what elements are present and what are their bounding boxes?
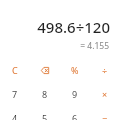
staticText: 9 (72, 88, 78, 100)
button[interactable]: 6 (60, 106, 90, 120)
staticText: C (12, 64, 18, 76)
button[interactable]: Backspace (30, 58, 60, 82)
staticText: = 4.155 (0, 40, 109, 52)
button[interactable]: % (60, 58, 90, 82)
staticText: 498.6÷120 (0, 17, 110, 37)
staticText: 5 (42, 112, 48, 120)
other: Backspace (41, 67, 49, 74)
staticText: 6 (72, 112, 78, 120)
button[interactable]: × (90, 82, 120, 106)
button[interactable]: C (0, 58, 30, 82)
staticText: ÷ (102, 64, 108, 76)
staticText: 8 (42, 88, 48, 100)
button[interactable]: 8 (30, 82, 60, 106)
button[interactable]: ÷ (90, 58, 120, 82)
staticText: % (71, 64, 79, 76)
button[interactable]: 5 (30, 106, 60, 120)
button[interactable]: 4 (0, 106, 30, 120)
staticText: − (102, 112, 108, 120)
button[interactable]: 7 (0, 82, 30, 106)
button[interactable]: − (90, 106, 120, 120)
staticText: 4 (12, 112, 18, 120)
staticText: × (102, 88, 108, 100)
button[interactable]: 9 (60, 82, 90, 106)
staticText: 7 (12, 88, 18, 100)
